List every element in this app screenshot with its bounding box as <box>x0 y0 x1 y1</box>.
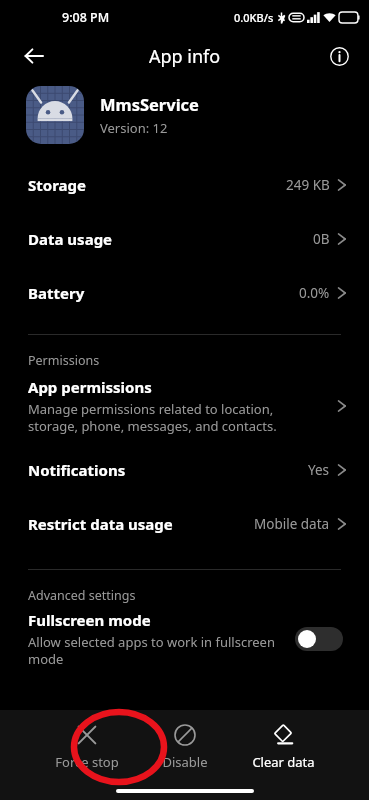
staticText: Version: 12 <box>100 119 168 137</box>
staticText: Fullscreen mode <box>28 610 151 630</box>
staticText: Disable <box>162 753 208 771</box>
staticText: MmsService <box>100 93 199 115</box>
staticText: Force stop <box>55 753 119 771</box>
button[interactable]: Disable <box>142 718 228 777</box>
button[interactable]: App permissions <box>0 371 369 443</box>
staticText: Manage permissions related to location, … <box>28 400 319 435</box>
staticText: 249 KB <box>286 176 330 194</box>
button[interactable]: Storage <box>0 158 369 212</box>
staticText: Permissions <box>28 352 100 369</box>
staticText: Mobile data <box>254 515 330 533</box>
staticText: 0.0KB/s <box>234 10 274 25</box>
staticText: App info <box>149 44 221 69</box>
button[interactable]: Data usage <box>0 212 369 266</box>
staticText: 9:08 PM <box>62 9 110 26</box>
staticText: Data usage <box>28 229 113 249</box>
staticText: Restrict data usage <box>28 514 173 534</box>
button[interactable]: Back <box>14 36 54 76</box>
button[interactable]: Force stop <box>44 718 130 777</box>
staticText: Storage <box>28 175 86 195</box>
button[interactable]: Clear data <box>240 718 326 777</box>
staticText: Yes <box>308 461 330 479</box>
button[interactable]: Battery <box>0 266 369 320</box>
button[interactable]: Notifications <box>0 443 369 497</box>
staticText: 0.0% <box>299 284 330 302</box>
staticText: Allow selected apps to work in fullscree… <box>28 633 279 668</box>
staticText: App permissions <box>28 377 152 397</box>
staticText: 0B <box>313 230 330 248</box>
staticText: Battery <box>28 283 85 303</box>
button[interactable]: About <box>321 38 357 74</box>
staticText: Clear data <box>252 753 315 771</box>
button[interactable]: Restrict data usage <box>0 497 369 551</box>
button[interactable]: Fullscreen mode toggle <box>295 627 343 651</box>
staticText: Advanced settings <box>28 587 136 604</box>
staticText: Notifications <box>28 460 126 480</box>
button[interactable]: Fullscreen mode <box>0 606 369 676</box>
